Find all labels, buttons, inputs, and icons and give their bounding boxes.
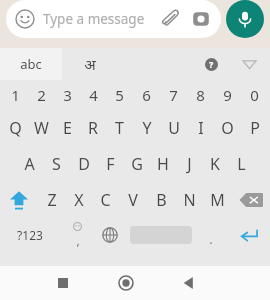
staticText: M — [210, 189, 225, 211]
button[interactable]: Help — [196, 49, 226, 79]
staticText: C — [100, 189, 111, 211]
button[interactable]: Comma and emoji — [60, 218, 94, 252]
staticText: X — [74, 189, 84, 211]
staticText: ?123 — [17, 227, 43, 243]
button[interactable]: V — [119, 182, 147, 218]
button[interactable]: 1 — [2, 80, 28, 110]
button[interactable]: 3 — [54, 80, 80, 110]
button[interactable]: Recent apps — [46, 266, 80, 300]
button[interactable]: 8 — [187, 80, 214, 110]
button[interactable]: Camera — [191, 9, 211, 29]
button[interactable]: P — [241, 110, 268, 146]
staticText: U — [168, 117, 180, 139]
staticText: F — [106, 153, 115, 175]
button[interactable]: Y — [133, 110, 160, 146]
button[interactable]: C — [92, 182, 119, 218]
staticText: अ — [84, 54, 96, 74]
button[interactable]: F — [97, 146, 124, 182]
button[interactable]: M — [203, 182, 231, 218]
staticText: J — [187, 153, 192, 175]
staticText: 0 — [250, 85, 259, 105]
button[interactable]: abc — [0, 48, 62, 80]
button[interactable]: E — [54, 110, 80, 146]
button[interactable]: 5 — [106, 80, 133, 110]
staticText: 6 — [142, 85, 151, 105]
staticText: Type a message — [43, 10, 145, 28]
button[interactable]: Enter — [226, 218, 270, 252]
button[interactable]: K — [202, 146, 228, 182]
staticText: R — [88, 117, 98, 139]
staticText: I — [198, 117, 204, 139]
staticText: 3 — [63, 85, 72, 105]
button[interactable]: ?123 — [0, 218, 60, 252]
staticText: 7 — [169, 85, 178, 105]
button[interactable]: J — [176, 146, 202, 182]
button[interactable]: 6 — [133, 80, 160, 110]
staticText: H — [157, 153, 169, 175]
button[interactable]: Back — [172, 266, 206, 300]
button[interactable]: 4 — [80, 80, 106, 110]
button[interactable]: U — [160, 110, 187, 146]
button[interactable]: Voice message — [226, 0, 264, 38]
button[interactable]: L — [228, 146, 254, 182]
staticText: K — [210, 153, 220, 175]
button[interactable]: W — [28, 110, 54, 146]
button[interactable]: . — [196, 218, 226, 252]
button[interactable]: G — [124, 146, 150, 182]
button[interactable]: Q — [2, 110, 28, 146]
button[interactable]: S — [43, 146, 70, 182]
staticText: E — [63, 117, 72, 139]
staticText: , — [76, 232, 80, 248]
button[interactable]: Shift — [0, 182, 38, 218]
staticText: A — [24, 153, 35, 175]
staticText: S — [52, 153, 61, 175]
staticText: W — [34, 117, 49, 139]
button[interactable]: O — [214, 110, 241, 146]
button[interactable]: A — [16, 146, 43, 182]
button[interactable]: N — [175, 182, 203, 218]
staticText: Q — [9, 117, 22, 139]
button[interactable]: अ — [62, 48, 118, 80]
staticText: abc — [20, 55, 42, 73]
button[interactable]: Emoji — [15, 9, 35, 29]
button[interactable]: Attach — [160, 9, 180, 29]
button[interactable]: Home — [109, 266, 143, 300]
button[interactable]: Z — [38, 182, 65, 218]
button[interactable]: R — [80, 110, 106, 146]
staticText: . — [209, 230, 213, 248]
button[interactable]: 2 — [28, 80, 54, 110]
button[interactable]: 0 — [241, 80, 268, 110]
button[interactable]: Backspace — [231, 182, 270, 218]
staticText: P — [250, 117, 260, 139]
button[interactable]: B — [147, 182, 175, 218]
staticText: 1 — [11, 85, 20, 105]
button[interactable]: 9 — [214, 80, 241, 110]
staticText: G — [131, 153, 143, 175]
button[interactable]: I — [187, 110, 214, 146]
staticText: L — [237, 153, 246, 175]
staticText: 5 — [115, 85, 124, 105]
button[interactable]: 7 — [160, 80, 187, 110]
button[interactable]: T — [106, 110, 133, 146]
button[interactable]: H — [150, 146, 176, 182]
staticText: O — [221, 117, 234, 139]
staticText: 2 — [37, 85, 46, 105]
staticText: B — [156, 189, 167, 211]
button[interactable]: Change language — [94, 218, 126, 252]
button[interactable]: Collapse keyboard — [234, 49, 264, 79]
staticText: 8 — [196, 85, 205, 105]
button[interactable]: X — [65, 182, 92, 218]
staticText: ? — [209, 58, 214, 70]
button[interactable]: Emoji — [6, 0, 221, 38]
button[interactable]: D — [70, 146, 97, 182]
button[interactable]: Space — [126, 218, 196, 252]
staticText: 9 — [223, 85, 232, 105]
staticText: 4 — [89, 85, 98, 105]
staticText: D — [78, 153, 90, 175]
staticText: V — [128, 189, 138, 211]
staticText: Y — [142, 117, 152, 139]
staticText: T — [115, 117, 124, 139]
staticText: Z — [47, 189, 57, 211]
staticText: N — [183, 189, 196, 211]
